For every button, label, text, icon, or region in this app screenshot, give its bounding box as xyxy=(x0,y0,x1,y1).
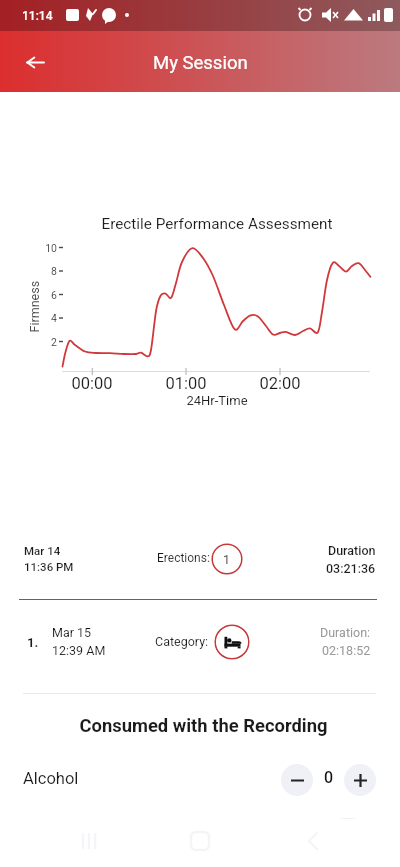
staticText: 00:00 xyxy=(71,374,113,393)
staticText: Duration xyxy=(328,543,376,558)
staticText: Mar 15 xyxy=(52,625,92,640)
staticText: Firmness xyxy=(26,280,41,332)
staticText: 02:00 xyxy=(259,374,301,393)
staticText: 12:39 AM xyxy=(52,643,106,658)
staticText: 11:14 xyxy=(22,9,53,23)
staticText: 01:00 xyxy=(165,374,207,393)
button[interactable]: Decrease alcohol xyxy=(281,764,313,796)
staticText: 02:18:52 xyxy=(322,643,371,658)
staticText: Duration: xyxy=(320,625,371,640)
staticText: 10 xyxy=(45,242,57,254)
staticText: 11:36 PM xyxy=(24,560,74,573)
button[interactable]: Mar 14 xyxy=(0,536,400,582)
staticText: 0 xyxy=(324,768,334,787)
staticText: Erectile Performance Assessment xyxy=(101,215,333,233)
staticText: 6 xyxy=(51,289,57,301)
staticText: 8 xyxy=(51,265,57,277)
button[interactable]: 1. xyxy=(0,620,400,664)
staticText: Category: xyxy=(155,634,209,649)
button[interactable]: Sleep category xyxy=(214,624,250,660)
staticText: Erections: xyxy=(157,551,210,565)
staticText: 24Hr-Time xyxy=(186,393,248,408)
staticText: 2 xyxy=(51,336,57,348)
staticText: Alcohol xyxy=(23,769,79,788)
staticText: 4 xyxy=(51,312,57,324)
staticText: Mar 14 xyxy=(24,544,61,557)
staticText: Consumed with the Recording xyxy=(79,715,328,737)
staticText: 03:21:36 xyxy=(326,561,376,576)
staticText: My Session xyxy=(153,52,248,74)
button[interactable]: Increase alcohol xyxy=(344,764,376,796)
staticText: 1. xyxy=(27,635,39,650)
staticText: 1 xyxy=(223,552,231,567)
button[interactable]: Back xyxy=(19,46,51,78)
